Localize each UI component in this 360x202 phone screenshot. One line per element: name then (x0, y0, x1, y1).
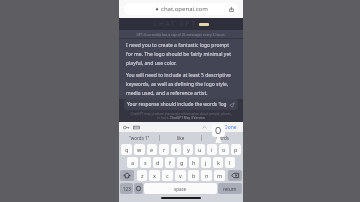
button[interactable]: Emoji (134, 183, 143, 194)
staticText: a (131, 159, 135, 166)
staticText: words (216, 135, 229, 141)
button[interactable]: return (218, 183, 242, 194)
button[interactable]: Scan card (133, 124, 140, 131)
staticText: "words 1" (129, 135, 150, 141)
button[interactable]: Backspace (228, 170, 242, 181)
button[interactable]: words (202, 132, 243, 143)
button[interactable]: k (213, 157, 223, 168)
staticText: w (137, 146, 142, 153)
staticText: chat.openai.com (161, 5, 208, 13)
button[interactable]: b (188, 170, 199, 181)
staticText: Done (224, 124, 237, 131)
staticText: h (192, 159, 196, 166)
staticText: y (187, 146, 190, 153)
staticText: u (198, 146, 202, 153)
staticText: x (153, 172, 156, 179)
staticText: ChatGPT May 3 Version (170, 116, 205, 120)
staticText: You will need to include at least 5 desc… (126, 72, 236, 96)
button[interactable]: l (225, 157, 235, 168)
staticText: d (156, 159, 160, 166)
button[interactable]: x (149, 170, 160, 181)
button[interactable]: m (214, 170, 225, 181)
button[interactable]: Next field (211, 124, 218, 131)
staticText: GPT-4 currently has a cap of 25 messages… (136, 32, 226, 37)
staticText: O (215, 125, 222, 136)
button[interactable]: p (231, 144, 241, 155)
staticText: e (150, 146, 154, 153)
staticText: I need you to create a fantastic logo pr… (126, 42, 236, 66)
staticText: like (177, 135, 185, 141)
button[interactable]: Send message (229, 102, 235, 108)
staticText: CHAT GPT (153, 19, 197, 29)
button[interactable]: "words 1" (119, 132, 159, 143)
button[interactable]: i (207, 144, 217, 155)
button[interactable]: h (189, 157, 199, 168)
button[interactable]: q (121, 144, 132, 155)
button[interactable]: r (159, 144, 169, 155)
staticText: p (234, 146, 238, 153)
staticText: i (211, 146, 213, 153)
button[interactable]: v (175, 170, 186, 181)
button[interactable]: a (127, 157, 138, 168)
staticText: space (174, 186, 187, 192)
staticText: v (179, 172, 182, 179)
button[interactable]: n (201, 170, 212, 181)
staticText: g (180, 159, 184, 166)
button[interactable]: Done (222, 123, 239, 132)
staticText: t (175, 146, 177, 153)
staticText: z (141, 172, 144, 179)
staticText: n (205, 172, 209, 179)
staticText: c (166, 172, 169, 179)
button[interactable]: 123 (120, 183, 133, 194)
button[interactable]: c (162, 170, 173, 181)
staticText: m (217, 172, 223, 179)
staticText: l (229, 159, 231, 166)
button[interactable]: j (201, 157, 211, 168)
staticText: or facts. (157, 116, 170, 120)
staticText: b (192, 172, 196, 179)
button[interactable]: y (183, 144, 193, 155)
staticText: ChatGPT may produce inaccurate informati… (130, 112, 232, 116)
button[interactable]: chat.openai.com (124, 3, 238, 15)
button[interactable]: e (147, 144, 157, 155)
staticText: 123 (123, 186, 131, 192)
button[interactable]: o (219, 144, 229, 155)
button[interactable]: space (144, 183, 217, 194)
staticText: r (163, 146, 166, 153)
staticText: k (217, 159, 220, 166)
button[interactable]: s (140, 157, 151, 168)
staticText: q (125, 146, 129, 153)
staticText: f (169, 159, 171, 166)
staticText: s (144, 159, 147, 166)
button[interactable]: g (177, 157, 187, 168)
button[interactable]: Your response should include the words '… (124, 99, 238, 110)
button[interactable]: like (160, 132, 201, 143)
button[interactable]: u (195, 144, 205, 155)
button[interactable]: Passwords (123, 124, 130, 131)
button[interactable]: t (171, 144, 181, 155)
button[interactable]: w (134, 144, 145, 155)
staticText: j (205, 159, 207, 166)
button[interactable]: Shift (120, 170, 134, 181)
staticText: Your response should include the words '… (127, 101, 227, 108)
button[interactable]: Previous field (201, 124, 208, 131)
staticText: return (223, 186, 237, 192)
button[interactable]: f (165, 157, 175, 168)
button[interactable]: z (137, 170, 147, 181)
staticText: o (222, 146, 226, 153)
button[interactable]: Share (228, 6, 235, 13)
button[interactable]: d (153, 157, 163, 168)
